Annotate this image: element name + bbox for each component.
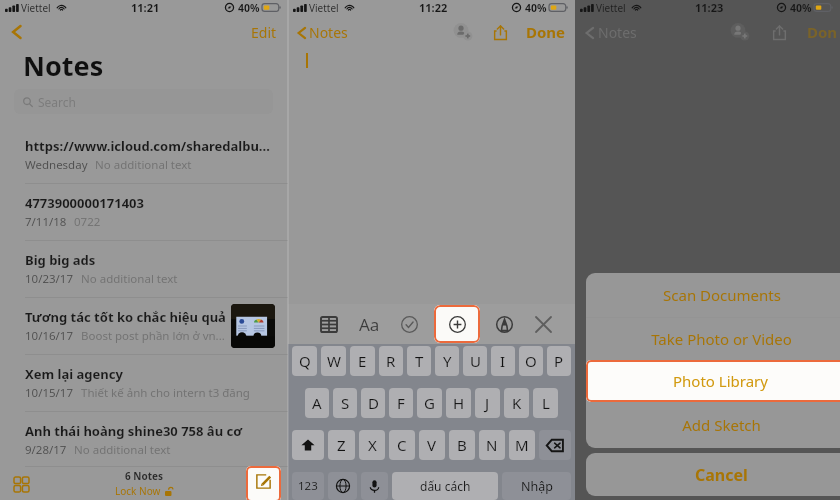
staticText: Photo Library: [673, 371, 768, 391]
button[interactable]: Checklist: [394, 309, 424, 339]
staticText: M: [515, 435, 529, 455]
staticText: F: [397, 393, 405, 413]
button[interactable]: Notes: [293, 21, 350, 44]
button[interactable]: Q: [292, 346, 317, 376]
staticText: 4773900000171403: [25, 194, 144, 212]
button[interactable]: Y: [435, 346, 459, 376]
button[interactable]: Big big ads: [0, 241, 288, 297]
staticText: 11:22: [419, 0, 448, 15]
button[interactable]: Anh thái hoàng shine30 758 âu cơ: [0, 412, 288, 468]
button[interactable]: Nhập: [502, 472, 571, 500]
button[interactable]: D: [361, 388, 385, 418]
staticText: Y: [443, 351, 452, 371]
staticText: dấu cách: [420, 478, 471, 494]
button[interactable]: Share: [488, 20, 512, 44]
staticText: 9/28/17: [25, 442, 67, 458]
button[interactable]: Share: [767, 20, 791, 44]
button[interactable]: S: [333, 388, 357, 418]
button[interactable]: M: [509, 430, 535, 460]
staticText: No additional text: [81, 271, 178, 287]
staticText: Boost post phần lớn ở vn...: [81, 328, 225, 344]
button[interactable]: Done: [524, 22, 568, 42]
button[interactable]: H: [446, 388, 471, 418]
staticText: Take Photo or Video: [651, 329, 792, 349]
staticText: Anh thái hoàng shine30 758 âu cơ: [25, 422, 243, 440]
staticText: Cancel: [695, 464, 748, 486]
button[interactable]: T: [407, 346, 431, 376]
staticText: O: [525, 351, 537, 371]
button[interactable]: Search: [14, 89, 273, 114]
staticText: No additional text: [95, 157, 192, 173]
staticText: 6 Notes: [125, 469, 164, 483]
button[interactable]: Backspace: [539, 430, 571, 460]
button[interactable]: https://www.icloud.com/sharedalbu...: [0, 127, 288, 183]
staticText: Add Sketch: [682, 415, 761, 435]
button[interactable]: Notes: [581, 21, 639, 44]
button[interactable]: R: [379, 346, 403, 376]
button[interactable]: G: [417, 388, 442, 418]
staticText: Edit: [251, 23, 277, 42]
button[interactable]: Shift: [292, 430, 324, 460]
staticText: N: [486, 435, 498, 455]
button[interactable]: Markup: [489, 309, 519, 339]
button[interactable]: P: [547, 346, 571, 376]
staticText: 11:21: [131, 0, 160, 15]
staticText: A: [312, 393, 322, 413]
button[interactable]: Close keyboard: [528, 309, 558, 339]
button[interactable]: L: [533, 388, 558, 418]
button[interactable]: K: [504, 388, 529, 418]
button[interactable]: B: [449, 430, 475, 460]
button[interactable]: Scan Documents: [586, 273, 840, 317]
button[interactable]: Cancel: [586, 453, 840, 496]
button[interactable]: Dictate: [361, 472, 388, 500]
button[interactable]: Add Sketch: [586, 402, 840, 448]
staticText: Viettel: [21, 1, 51, 15]
staticText: 123: [298, 478, 318, 494]
button[interactable]: Add people: [450, 19, 476, 45]
button[interactable]: Aa: [353, 308, 385, 340]
button[interactable]: Back: [6, 21, 28, 43]
staticText: Z: [337, 435, 346, 455]
staticText: D: [368, 393, 379, 413]
staticText: Aa: [359, 313, 380, 336]
button[interactable]: Folders: [8, 471, 34, 497]
staticText: No additional text: [74, 442, 171, 458]
button[interactable]: W: [321, 346, 346, 376]
button[interactable]: E: [350, 346, 375, 376]
button[interactable]: dấu cách: [392, 472, 498, 500]
staticText: J: [485, 393, 490, 413]
button[interactable]: O: [519, 346, 543, 376]
button[interactable]: U: [463, 346, 487, 376]
button[interactable]: New note: [246, 466, 281, 500]
button[interactable]: Edit: [248, 20, 280, 45]
button[interactable]: 123: [292, 472, 324, 500]
staticText: Wednesday: [25, 157, 88, 173]
button[interactable]: Take Photo or Video: [586, 318, 840, 360]
button[interactable]: Add attachment: [434, 305, 480, 343]
staticText: 40%: [525, 1, 547, 15]
button[interactable]: Xem lại agency: [0, 355, 288, 411]
button[interactable]: Lock Now: [115, 484, 161, 498]
staticText: https://www.icloud.com/sharedalbu...: [25, 137, 270, 155]
button[interactable]: F: [389, 388, 413, 418]
button[interactable]: X: [359, 430, 385, 460]
staticText: Viettel: [596, 1, 626, 15]
button[interactable]: Table: [314, 309, 344, 339]
staticText: Lock Now: [115, 484, 161, 498]
button[interactable]: Photo Library: [586, 360, 840, 402]
button[interactable]: Switch language: [328, 472, 357, 500]
staticText: Thiết kế ảnh cho intern t3 đăng: [81, 385, 250, 401]
button[interactable]: C: [389, 430, 415, 460]
button[interactable]: Tương tác tốt ko chắc hiệu quả: [0, 298, 288, 354]
button[interactable]: I: [491, 346, 515, 376]
button[interactable]: A: [305, 388, 329, 418]
button[interactable]: N: [479, 430, 505, 460]
button[interactable]: Don: [805, 22, 840, 42]
staticText: Tương tác tốt ko chắc hiệu quả: [25, 308, 226, 326]
button[interactable]: Add people: [727, 19, 753, 45]
staticText: Scan Documents: [663, 285, 781, 305]
button[interactable]: J: [475, 388, 500, 418]
button[interactable]: Z: [328, 430, 355, 460]
button[interactable]: V: [419, 430, 445, 460]
button[interactable]: 4773900000171403: [0, 184, 288, 240]
